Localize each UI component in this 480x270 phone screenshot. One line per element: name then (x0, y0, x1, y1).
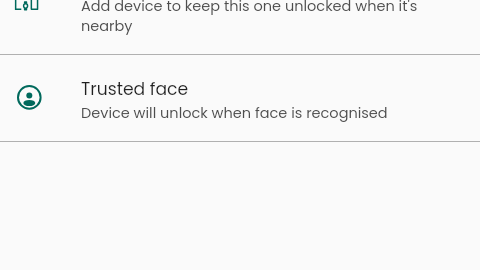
staticText: nearby (81, 16, 133, 36)
staticText: Add device to keep this one unlocked whe… (81, 0, 418, 16)
other: Trusted face (0, 55, 480, 141)
staticText: Trusted face (81, 77, 189, 101)
staticText: Device will unlock when face is recognis… (81, 103, 388, 123)
other: Add trusted device (0, 0, 44, 30)
button[interactable]: Add trusted device (0, 0, 480, 54)
button[interactable]: Trusted face (0, 55, 480, 141)
